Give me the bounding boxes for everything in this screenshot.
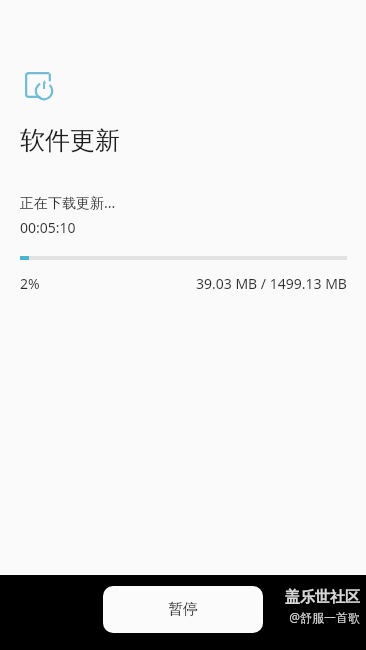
staticText: @舒服一首歌	[289, 609, 360, 625]
other: Software update	[25, 72, 56, 103]
staticText: 软件更新	[20, 125, 120, 156]
staticText: 39.03 MB / 1499.13 MB	[196, 274, 347, 293]
button[interactable]: 暂停	[103, 586, 263, 633]
staticText: 暂停	[168, 600, 198, 619]
staticText: 正在下载更新...	[20, 193, 116, 212]
staticText: 盖乐世社区	[285, 588, 360, 607]
staticText: 00:05:10	[20, 218, 76, 237]
staticText: 2%	[20, 274, 40, 293]
